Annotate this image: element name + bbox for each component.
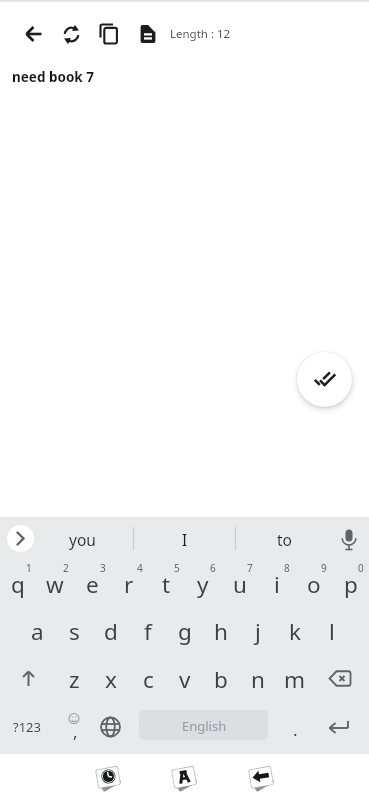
button[interactable]: x — [93, 656, 129, 702]
staticText: w — [46, 569, 64, 600]
button[interactable]: English — [144, 711, 264, 741]
staticText: 3 — [100, 561, 106, 575]
staticText: r — [124, 569, 134, 600]
staticText: s — [69, 616, 80, 647]
button[interactable] — [168, 761, 200, 793]
staticText: x — [105, 664, 117, 695]
staticText: i — [274, 569, 280, 600]
staticText: 1 — [26, 561, 32, 575]
staticText: 9 — [321, 561, 327, 575]
button[interactable]: w — [37, 561, 73, 607]
staticText: n — [251, 664, 265, 695]
staticText: m — [284, 664, 306, 695]
button[interactable]: I — [145, 519, 225, 559]
staticText: v — [179, 664, 191, 695]
button[interactable]: s — [56, 608, 92, 654]
button[interactable] — [297, 352, 352, 407]
button[interactable] — [94, 18, 126, 50]
button[interactable]: j — [240, 608, 276, 654]
button[interactable]: to — [244, 519, 324, 559]
button[interactable]: , — [65, 719, 85, 743]
staticText: 0 — [358, 561, 364, 575]
staticText: a — [31, 616, 44, 647]
staticText: , — [73, 720, 78, 743]
button[interactable]: ?123 — [5, 707, 49, 747]
staticText: p — [344, 569, 358, 600]
staticText: b — [214, 664, 228, 695]
staticText: need book 7 — [12, 68, 94, 86]
staticText: d — [104, 616, 118, 647]
staticText: k — [289, 616, 302, 647]
staticText: to — [277, 529, 292, 550]
button[interactable]: k — [277, 608, 313, 654]
button[interactable]: u — [222, 561, 258, 607]
button[interactable]: . — [283, 714, 307, 744]
button[interactable] — [92, 761, 124, 793]
staticText: ?123 — [13, 718, 41, 736]
staticText: I — [182, 529, 188, 550]
button[interactable]: q — [0, 561, 36, 607]
button[interactable] — [55, 18, 87, 50]
staticText: h — [214, 616, 228, 647]
button[interactable]: v — [167, 656, 203, 702]
staticText: c — [143, 664, 154, 695]
staticText: . — [293, 718, 298, 741]
staticText: z — [69, 664, 80, 695]
staticText: g — [178, 616, 192, 647]
button[interactable]: p — [333, 561, 369, 607]
button[interactable]: c — [130, 656, 166, 702]
staticText: 4 — [137, 561, 143, 575]
button[interactable]: i — [259, 561, 295, 607]
button[interactable]: o — [296, 561, 332, 607]
staticText: 2 — [63, 561, 69, 575]
staticText: you — [69, 529, 96, 550]
staticText: 5 — [174, 561, 180, 575]
button[interactable]: z — [56, 656, 92, 702]
button[interactable]: e — [74, 561, 110, 607]
button[interactable]: b — [203, 656, 239, 702]
button[interactable]: h — [203, 608, 239, 654]
button[interactable]: r — [111, 561, 147, 607]
staticText: English — [182, 717, 227, 735]
button[interactable]: l — [314, 608, 350, 654]
staticText: 8 — [284, 561, 290, 575]
button[interactable]: m — [277, 656, 313, 702]
staticText: t — [162, 569, 171, 600]
button[interactable] — [132, 18, 164, 50]
button[interactable]: f — [130, 608, 166, 654]
staticText: e — [86, 569, 99, 600]
staticText: 7 — [247, 561, 253, 575]
button[interactable]: you — [42, 519, 122, 559]
button[interactable]: d — [93, 608, 129, 654]
staticText: u — [233, 569, 247, 600]
staticText: o — [307, 569, 321, 600]
button[interactable] — [245, 761, 277, 793]
button[interactable]: g — [167, 608, 203, 654]
staticText: l — [329, 616, 335, 647]
staticText: y — [197, 569, 209, 600]
staticText: Length : 12 — [170, 26, 231, 42]
button[interactable]: t — [148, 561, 184, 607]
staticText: 6 — [210, 561, 216, 575]
staticText: j — [255, 616, 261, 647]
button[interactable]: n — [240, 656, 276, 702]
staticText: q — [11, 569, 25, 600]
staticText: f — [144, 616, 152, 647]
button[interactable]: a — [19, 608, 55, 654]
button[interactable] — [7, 525, 34, 552]
button[interactable]: y — [185, 561, 221, 607]
button[interactable] — [18, 18, 50, 50]
